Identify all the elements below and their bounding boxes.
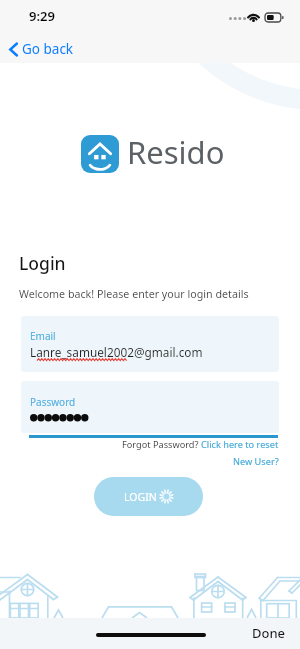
staticText: Welcome back! Please enter your login de… — [19, 287, 249, 302]
staticText: Resido — [127, 131, 225, 173]
button[interactable]: Click here to reset — [201, 438, 279, 451]
staticText: Email — [30, 329, 56, 343]
button[interactable]: Email — [21, 316, 279, 372]
button[interactable]: Done — [252, 624, 286, 642]
staticText: Go back — [22, 40, 74, 58]
button[interactable]: Password — [21, 381, 279, 433]
button[interactable]: LOGIN — [94, 477, 203, 516]
staticText: Lanre_samuel2002@gmail.com — [30, 344, 203, 360]
staticText: Forgot Password? — [122, 438, 201, 451]
staticText: Login — [19, 251, 66, 275]
staticText: 9:29 — [29, 7, 55, 25]
staticText: Password — [30, 395, 76, 409]
staticText: LOGIN — [124, 490, 157, 504]
button[interactable]: Go back — [0, 36, 88, 63]
button[interactable]: New User? — [233, 455, 279, 468]
